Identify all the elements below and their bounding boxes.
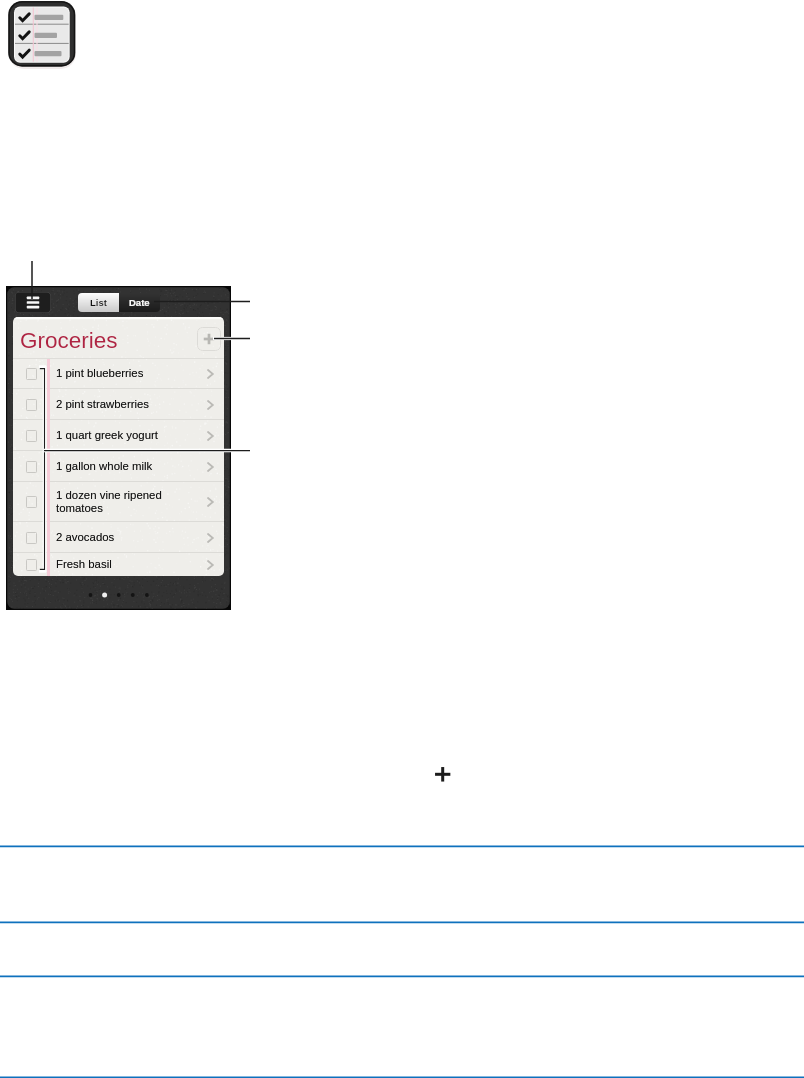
staticText: 1 quart greek yogurt (56, 429, 158, 442)
staticText: 2 pint strawberries (56, 398, 150, 411)
button[interactable]: Menu (15, 292, 51, 313)
button[interactable]: 1 pint blueberries (13, 358, 224, 389)
staticText: 1 gallon whole milk (56, 460, 153, 473)
staticText: Fresh basil (56, 558, 112, 571)
staticText: Date (129, 297, 150, 308)
staticText: 2 avocados (56, 531, 115, 544)
staticText: 2 avocados (56, 531, 115, 544)
button[interactable]: Date (119, 293, 160, 312)
staticText: 1 pint blueberries (56, 367, 144, 380)
button[interactable]: 1 gallon whole milk (13, 451, 224, 482)
staticText: 2 pint strawberries (56, 398, 150, 411)
button[interactable]: Add item (197, 327, 221, 351)
button[interactable]: 2 pint strawberries (13, 389, 224, 420)
button[interactable]: 1 quart greek yogurt (13, 420, 224, 451)
staticText: Groceries (20, 328, 118, 353)
button[interactable]: Reminders app icon (6, 0, 78, 72)
staticText: Fresh basil (56, 558, 112, 571)
button[interactable]: 2 avocados (13, 522, 224, 553)
button[interactable]: 1 dozen vine ripened tomatoes (13, 482, 224, 522)
staticText: 1 quart greek yogurt (56, 429, 158, 442)
staticText: 1 dozen vine ripened tomatoes (56, 489, 162, 515)
staticText: 1 dozen vine ripened tomatoes (56, 489, 162, 515)
staticText: List (90, 297, 107, 308)
staticText: 1 gallon whole milk (56, 460, 153, 473)
button[interactable]: List (78, 293, 119, 312)
staticText: 1 pint blueberries (56, 367, 144, 380)
button[interactable]: Fresh basil (13, 553, 224, 576)
